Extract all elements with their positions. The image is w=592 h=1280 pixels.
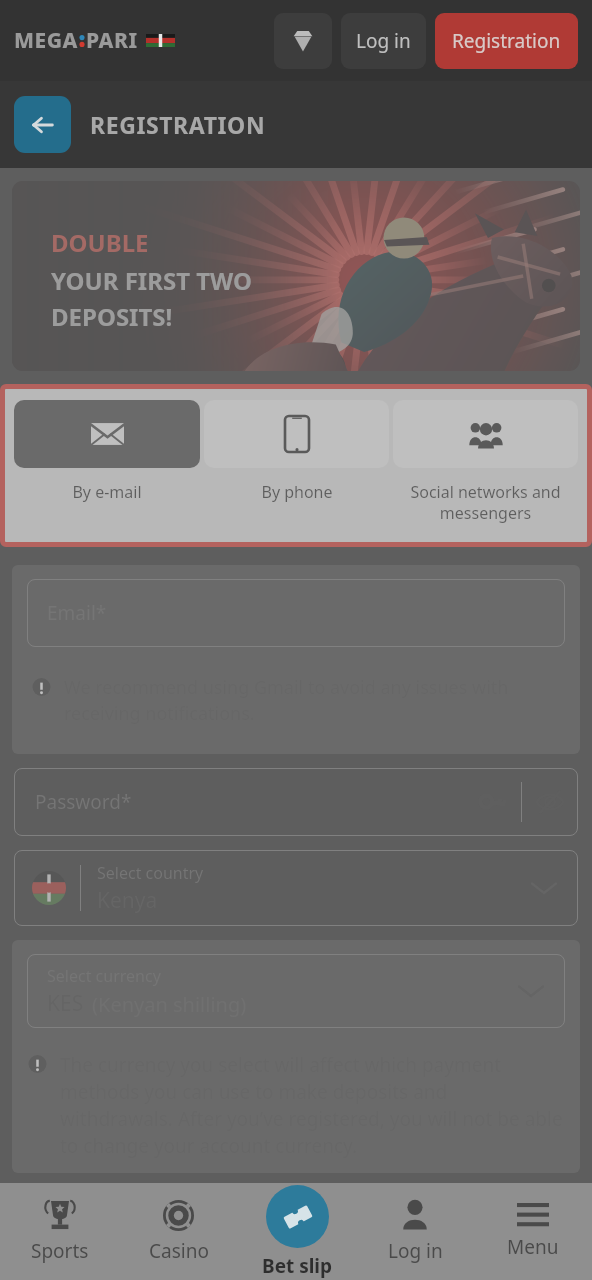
- staticText: Social networks and messengers: [393, 481, 578, 524]
- staticText: PARI: [86, 26, 138, 55]
- staticText: DOUBLE: [51, 226, 149, 259]
- staticText: Menu: [507, 1234, 559, 1260]
- button[interactable]: Menu: [474, 1183, 592, 1280]
- button[interactable]: Social networks and messengers: [393, 400, 578, 524]
- button[interactable]: Email*: [27, 579, 565, 647]
- staticText: Log in: [388, 1238, 443, 1264]
- button[interactable]: By phone: [204, 400, 389, 503]
- staticText: DEPOSITS!: [51, 300, 173, 333]
- staticText: By e-mail: [72, 481, 142, 503]
- staticText: Select country: [97, 862, 204, 884]
- button[interactable]: Select country: [14, 850, 578, 926]
- staticText: Casino: [149, 1238, 209, 1264]
- button[interactable]: Show password: [522, 774, 578, 830]
- button[interactable]: Bet slip: [238, 1183, 356, 1280]
- button[interactable]: Registration: [435, 13, 578, 69]
- button[interactable]: Log in: [341, 13, 426, 69]
- button[interactable]: Password*: [14, 768, 578, 836]
- staticText: MEGA: [14, 26, 78, 55]
- button[interactable]: Sports: [0, 1183, 119, 1280]
- button[interactable]: Bonuses: [274, 13, 332, 69]
- staticText: Bet slip: [262, 1253, 333, 1279]
- staticText: Log in: [356, 28, 411, 54]
- button[interactable]: Log in: [356, 1183, 474, 1280]
- staticText: Registration: [452, 28, 561, 54]
- staticText: Email*: [47, 600, 107, 626]
- button[interactable]: Back: [14, 96, 71, 153]
- button[interactable]: By e-mail: [14, 400, 200, 503]
- staticText: YOUR FIRST TWO: [51, 264, 253, 297]
- button[interactable]: Casino: [119, 1183, 238, 1280]
- staticText: Password*: [35, 789, 132, 815]
- staticText: By phone: [261, 481, 333, 503]
- button[interactable]: DOUBLE: [12, 181, 580, 371]
- staticText: Sports: [31, 1238, 89, 1264]
- staticText: REGISTRATION: [90, 109, 266, 140]
- button[interactable]: Select currency: [27, 954, 565, 1028]
- staticText: Select currency: [47, 965, 161, 987]
